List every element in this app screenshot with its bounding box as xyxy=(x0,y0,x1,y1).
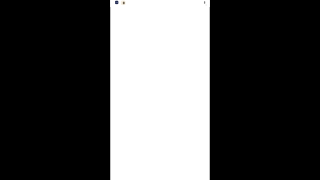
button[interactable]: Home xyxy=(115,0,126,7)
button[interactable]: More xyxy=(201,0,207,7)
